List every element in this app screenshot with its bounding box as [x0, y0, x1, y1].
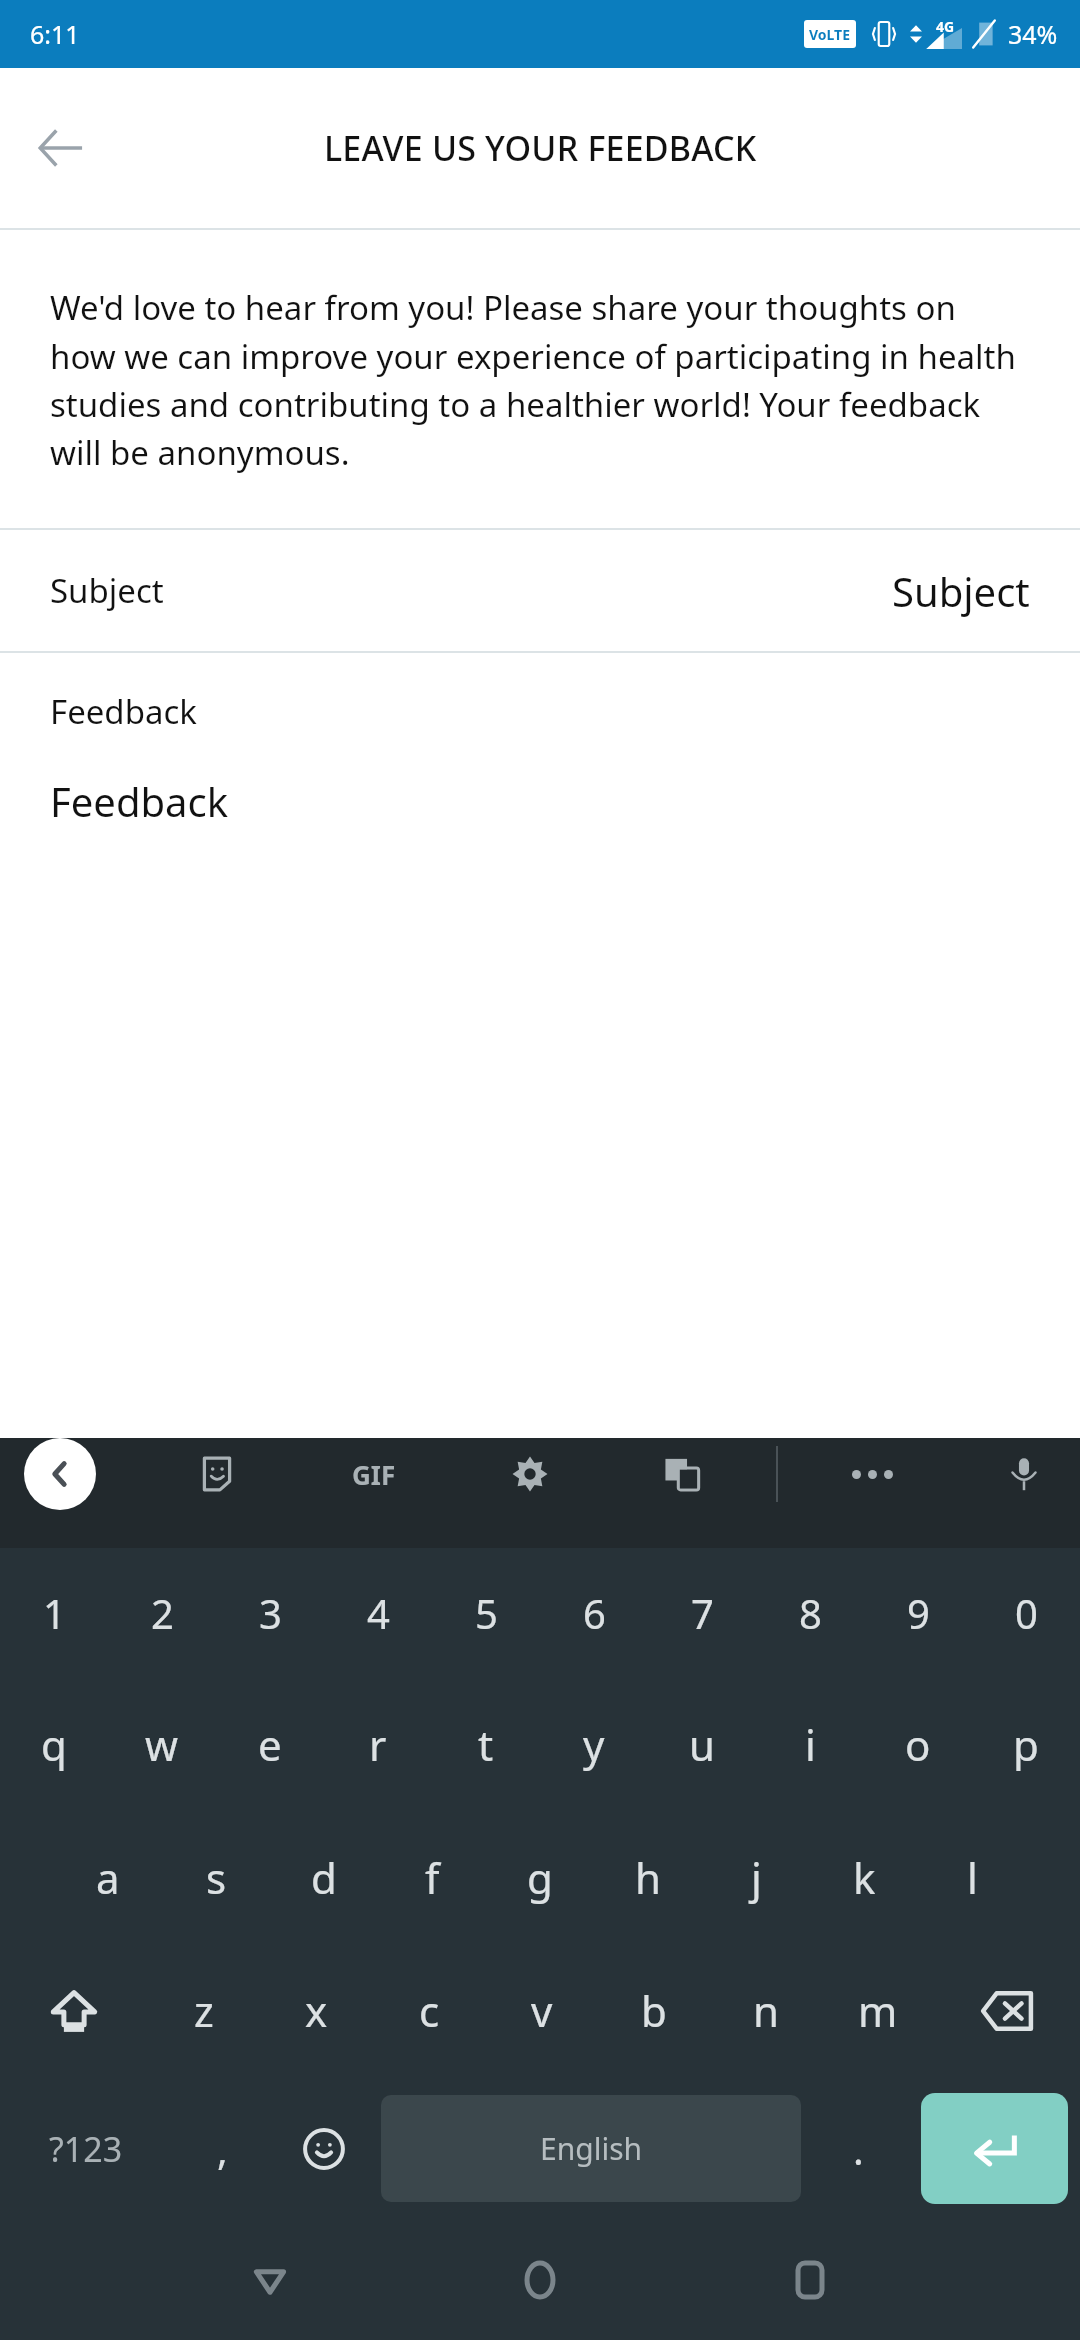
button[interactable]: English	[381, 2095, 801, 2202]
button[interactable]: 9	[864, 1548, 972, 1678]
button[interactable]: 1	[0, 1548, 108, 1678]
button[interactable]: 3	[216, 1548, 324, 1678]
button[interactable]: 0	[972, 1548, 1080, 1678]
button[interactable]: 6	[540, 1548, 648, 1678]
button[interactable]: ,	[171, 2077, 273, 2220]
staticText: x	[305, 1982, 328, 2039]
button[interactable]: r	[324, 1678, 432, 1811]
button[interactable]: 8	[756, 1548, 864, 1678]
button[interactable]: t	[432, 1678, 540, 1811]
staticText: p	[1013, 1716, 1039, 1773]
button[interactable]: Recent apps	[725, 2220, 894, 2340]
button[interactable]: ?123	[0, 2077, 171, 2220]
button[interactable]: y	[540, 1678, 648, 1811]
button[interactable]: j	[702, 1811, 810, 1944]
button[interactable]: m	[822, 1944, 934, 2077]
staticText: d	[311, 1849, 337, 1906]
staticText: .	[853, 2122, 864, 2176]
staticText: 0	[1015, 1586, 1038, 1640]
staticText: 6	[583, 1586, 606, 1640]
button[interactable]: Home	[455, 2220, 624, 2340]
button[interactable]: a	[54, 1811, 162, 1944]
staticText: k	[853, 1849, 876, 1906]
button[interactable]: Shift	[0, 1944, 147, 2077]
staticText: h	[635, 1849, 661, 1906]
staticText: b	[641, 1982, 667, 2039]
button[interactable]: p	[972, 1678, 1080, 1811]
button[interactable]: k	[810, 1811, 918, 1944]
staticText: Subject	[892, 564, 1030, 618]
staticText: a	[96, 1849, 120, 1906]
staticText: 6:11	[30, 17, 80, 51]
staticText: i	[805, 1716, 816, 1773]
staticText: 4G	[936, 17, 955, 36]
staticText: v	[531, 1982, 553, 2039]
button[interactable]: Translate	[650, 1442, 714, 1506]
button[interactable]: Back	[24, 112, 96, 184]
staticText: y	[583, 1716, 605, 1773]
button[interactable]: Subject	[0, 530, 1080, 651]
staticText: r	[369, 1716, 387, 1773]
staticText: q	[41, 1716, 67, 1773]
staticText: Subject	[50, 568, 164, 613]
staticText: 5	[475, 1586, 498, 1640]
button[interactable]: More options	[840, 1442, 904, 1506]
staticText: 3	[259, 1586, 282, 1640]
button[interactable]: Feedback	[0, 653, 1080, 828]
button[interactable]: d	[270, 1811, 378, 1944]
staticText: GIF	[352, 1457, 396, 1492]
button[interactable]: Stickers	[185, 1442, 249, 1506]
button[interactable]: o	[864, 1678, 972, 1811]
staticText: 4	[367, 1586, 390, 1640]
button[interactable]: c	[373, 1944, 486, 2077]
button[interactable]: u	[648, 1678, 756, 1811]
button[interactable]: 2	[108, 1548, 216, 1678]
button[interactable]: q	[0, 1678, 108, 1811]
button[interactable]: GIF	[338, 1438, 410, 1510]
button[interactable]: 5	[432, 1548, 540, 1678]
button[interactable]: h	[594, 1811, 702, 1944]
button[interactable]: v	[486, 1944, 598, 2077]
staticText: We'd love to hear from you! Please share…	[50, 285, 1030, 474]
button[interactable]: z	[147, 1944, 260, 2077]
staticText: z	[194, 1982, 214, 2039]
staticText: t	[478, 1716, 494, 1773]
staticText: j	[751, 1849, 762, 1906]
button[interactable]: x	[260, 1944, 373, 2077]
staticText: Feedback	[50, 774, 229, 828]
staticText: e	[258, 1716, 282, 1773]
button[interactable]: g	[486, 1811, 594, 1944]
button[interactable]: 4	[324, 1548, 432, 1678]
staticText: 34%	[1008, 17, 1058, 51]
button[interactable]: Close toolbar	[24, 1438, 96, 1510]
staticText: n	[753, 1982, 779, 2039]
staticText: f	[425, 1849, 440, 1906]
button[interactable]: b	[598, 1944, 710, 2077]
button[interactable]: i	[756, 1678, 864, 1811]
button[interactable]: n	[710, 1944, 822, 2077]
button[interactable]: f	[378, 1811, 486, 1944]
staticText: LEAVE US YOUR FEEDBACK	[324, 125, 757, 171]
button[interactable]: .	[807, 2077, 909, 2220]
button[interactable]: w	[108, 1678, 216, 1811]
staticText: English	[540, 2128, 643, 2169]
button[interactable]: Settings	[498, 1442, 562, 1506]
staticText: w	[145, 1716, 179, 1773]
button[interactable]: Back	[185, 2220, 354, 2340]
staticText: 1	[43, 1586, 66, 1640]
staticText: 9	[907, 1586, 930, 1640]
button[interactable]: l	[918, 1811, 1026, 1944]
button[interactable]: Backspace	[934, 1944, 1080, 2077]
staticText: ?123	[49, 2126, 123, 2172]
button[interactable]: Emoji	[273, 2077, 375, 2220]
staticText: g	[527, 1849, 553, 1906]
staticText: l	[967, 1849, 978, 1906]
button[interactable]: Enter	[921, 2093, 1068, 2204]
button[interactable]: 7	[648, 1548, 756, 1678]
button[interactable]: s	[162, 1811, 270, 1944]
button[interactable]: e	[216, 1678, 324, 1811]
staticText: u	[689, 1716, 715, 1773]
button[interactable]: Voice input	[992, 1442, 1056, 1506]
staticText: 2	[151, 1586, 174, 1640]
staticText: 7	[691, 1586, 714, 1640]
